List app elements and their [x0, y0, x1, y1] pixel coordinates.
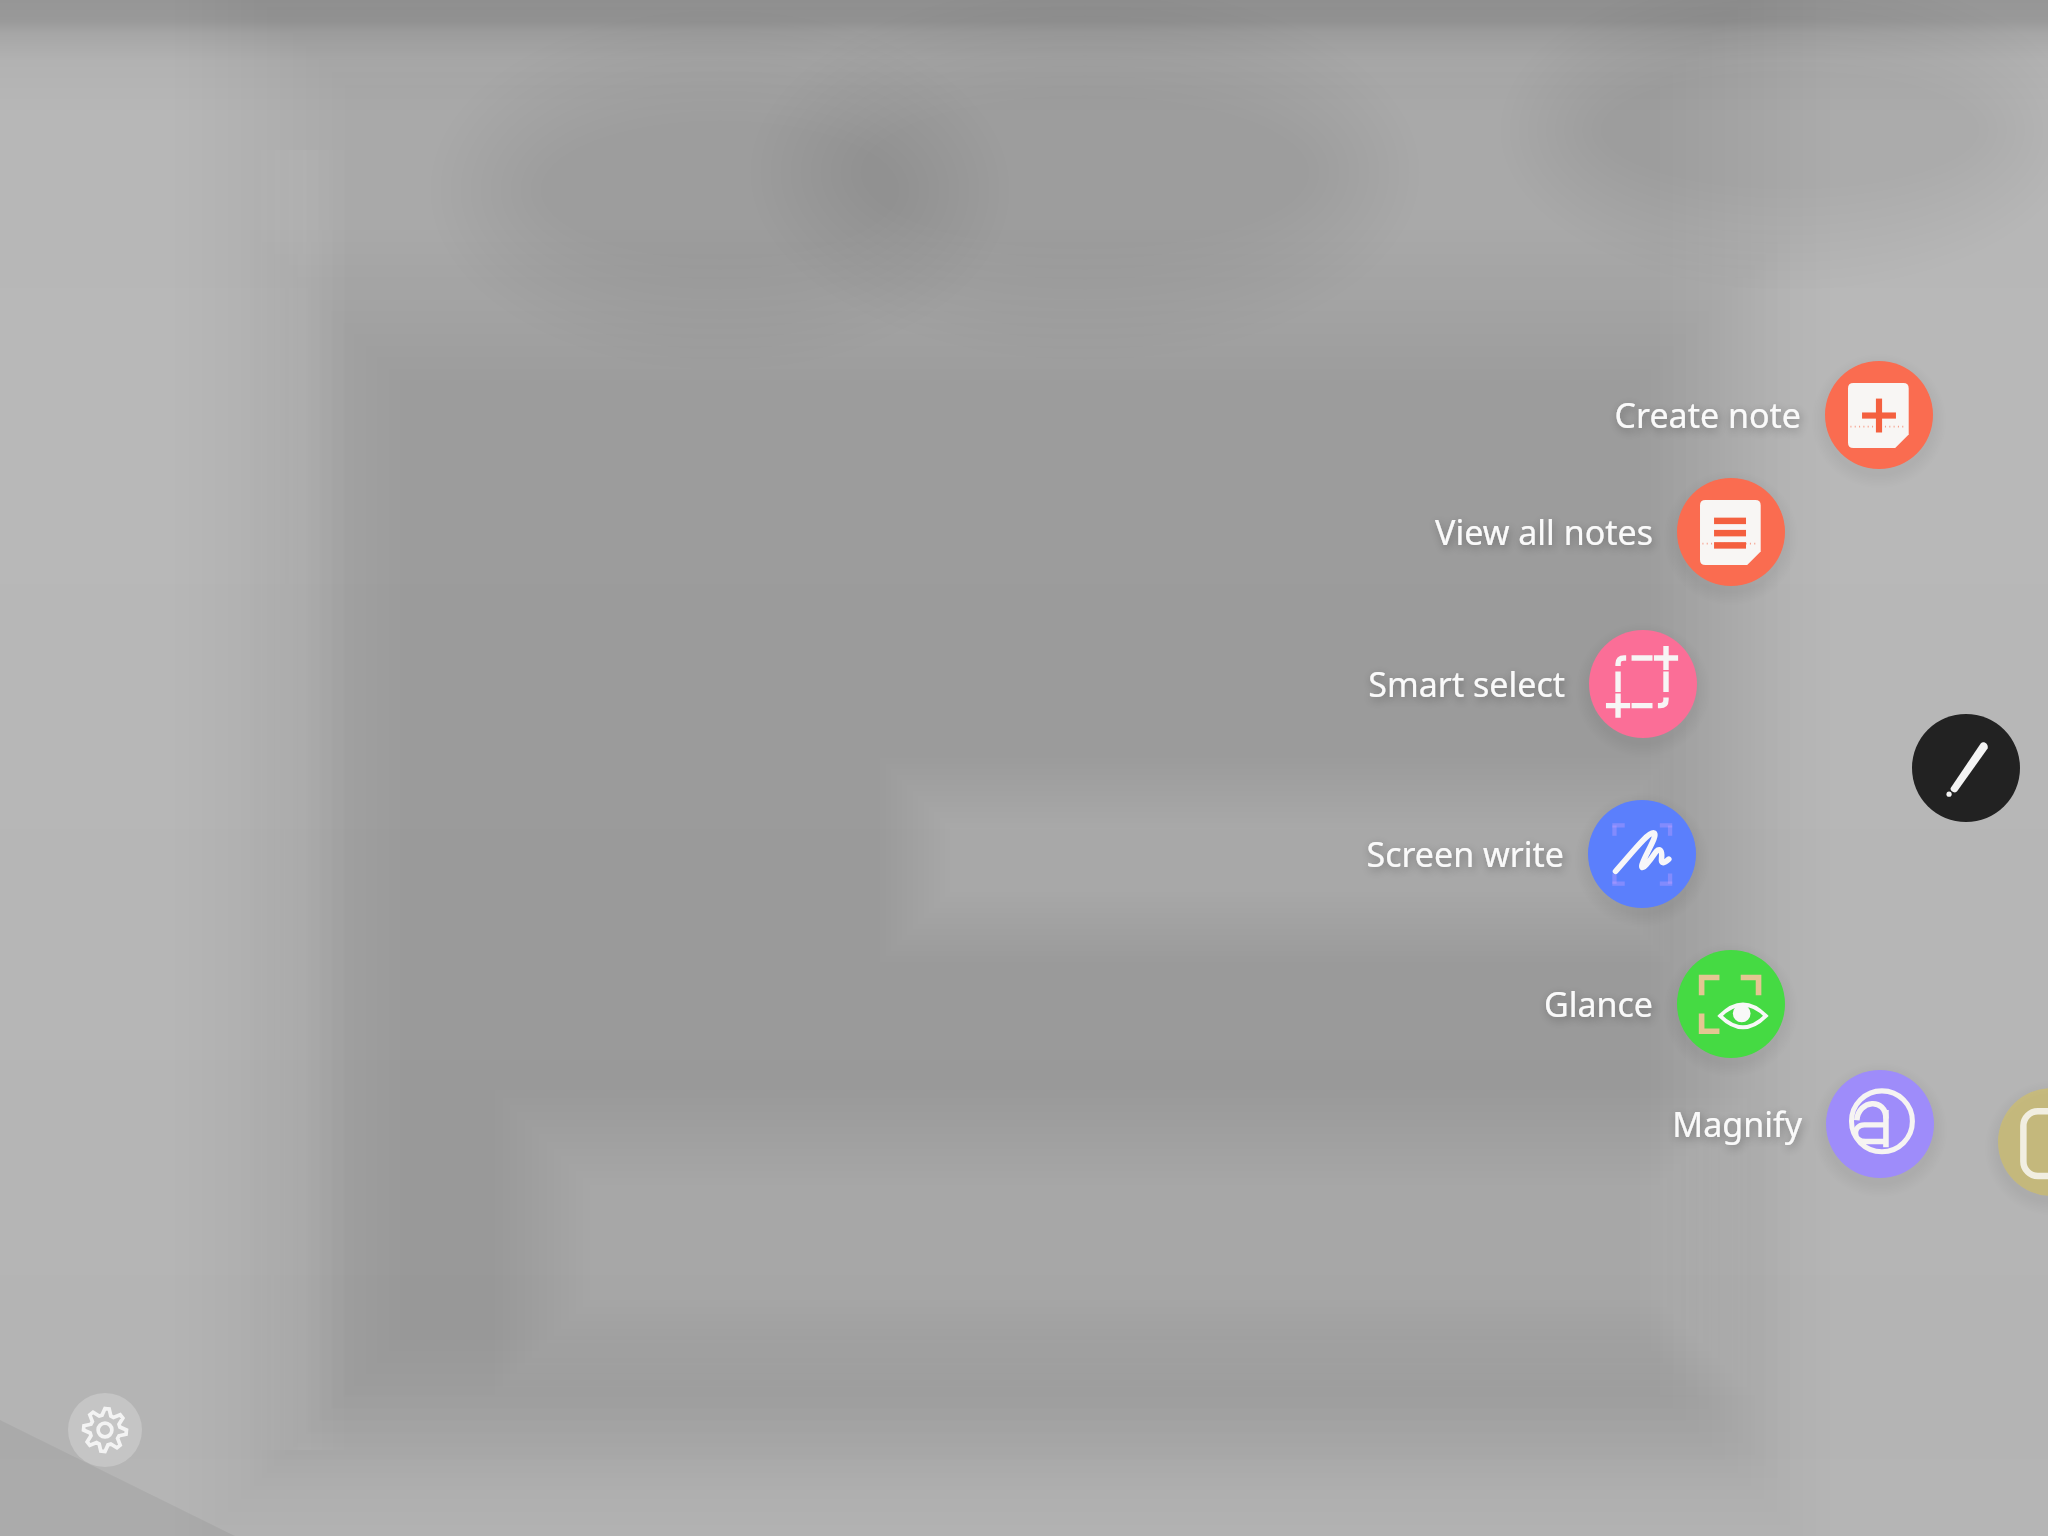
button[interactable]: View all notes: [1333, 478, 1785, 586]
button[interactable]: Settings: [68, 1393, 142, 1467]
staticText: Glance: [1333, 981, 1653, 1027]
staticText: View all notes: [1333, 509, 1653, 555]
button[interactable]: Glance: [1333, 950, 1785, 1058]
staticText: Magnify: [1482, 1101, 1802, 1147]
staticText: Smart select: [1245, 661, 1565, 707]
button[interactable]: S Pen Air command: [1912, 714, 2020, 822]
button[interactable]: Create note: [1481, 361, 1933, 469]
button[interactable]: Screen write: [1244, 800, 1696, 908]
button[interactable]: Magnify: [1482, 1070, 1934, 1178]
staticText: Screen write: [1244, 831, 1564, 877]
button[interactable]: Smart select: [1245, 630, 1697, 738]
button[interactable]: Translate: [1998, 1088, 2048, 1196]
staticText: Create note: [1481, 392, 1801, 438]
